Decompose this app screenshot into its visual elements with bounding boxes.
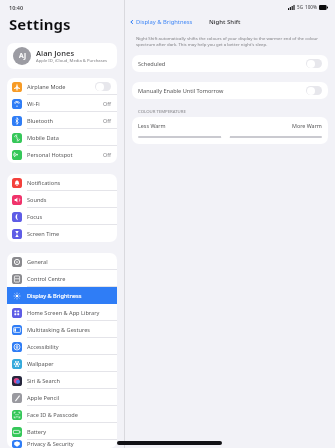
button[interactable]: Screen Time bbox=[7, 225, 117, 242]
staticText: Bluetooth bbox=[27, 117, 103, 125]
staticText: Screen Time bbox=[27, 230, 111, 238]
button[interactable]: Wallpaper bbox=[7, 355, 117, 372]
staticText: Focus bbox=[27, 213, 111, 221]
button[interactable]: Accessibility bbox=[7, 338, 117, 355]
button[interactable]: Face ID & Passcode bbox=[7, 406, 117, 423]
button[interactable]: Siri & Search bbox=[7, 372, 117, 389]
button[interactable]: Bluetooth bbox=[7, 112, 117, 129]
staticText: More Warm bbox=[292, 122, 322, 129]
staticText: Sounds bbox=[27, 196, 111, 204]
staticText: 5G bbox=[297, 4, 303, 10]
button[interactable]: Less Warm bbox=[132, 117, 328, 144]
staticText: Scheduled bbox=[138, 60, 306, 68]
staticText: 100% bbox=[305, 4, 317, 10]
button[interactable]: Focus bbox=[7, 208, 117, 225]
staticText: 10:40 bbox=[9, 4, 24, 11]
staticText: COLOUR TEMPERATURE bbox=[138, 108, 186, 114]
staticText: Face ID & Passcode bbox=[27, 411, 111, 419]
staticText: Accessibility bbox=[27, 343, 111, 351]
button[interactable]: General bbox=[7, 253, 117, 270]
button[interactable]: Scheduled bbox=[132, 55, 328, 72]
staticText: Manually Enable Until Tomorrow bbox=[138, 87, 306, 95]
button[interactable]: Wi-Fi bbox=[7, 95, 117, 112]
staticText: Off bbox=[103, 100, 111, 107]
button[interactable]: Mobile Data bbox=[7, 129, 117, 146]
staticText: Display & Brightness bbox=[27, 292, 111, 300]
staticText: Less Warm bbox=[138, 122, 166, 129]
button[interactable]: Apple Pencil bbox=[7, 389, 117, 406]
button[interactable]: Home Screen & App Library bbox=[7, 304, 117, 321]
button[interactable]: Manually Enable Until Tomorrow bbox=[132, 82, 328, 99]
staticText: Home Screen & App Library bbox=[27, 309, 111, 317]
staticText: Alan Jones bbox=[36, 48, 75, 58]
staticText: Airplane Mode bbox=[27, 83, 95, 91]
staticText: Privacy & Security bbox=[27, 440, 111, 448]
staticText: Personal Hotspot bbox=[27, 151, 103, 159]
button[interactable]: Sounds bbox=[7, 191, 117, 208]
staticText: Apple Pencil bbox=[27, 394, 111, 402]
staticText: Wallpaper bbox=[27, 360, 111, 368]
staticText: Off bbox=[103, 151, 111, 158]
button[interactable]: Control Centre bbox=[7, 270, 117, 287]
button[interactable]: Privacy & Security bbox=[7, 440, 117, 448]
staticText: Settings bbox=[9, 14, 71, 34]
button[interactable]: Airplane Mode bbox=[7, 78, 117, 95]
button[interactable]: Personal Hotspot bbox=[7, 146, 117, 163]
staticText: Off bbox=[103, 117, 111, 124]
staticText: AJ bbox=[19, 51, 26, 61]
staticText: Apple ID, iCloud, Media & Purchases bbox=[36, 58, 108, 64]
staticText: Night Shift automatically shifts the col… bbox=[136, 35, 324, 47]
staticText: General bbox=[27, 258, 111, 266]
button[interactable]: Battery bbox=[7, 423, 117, 440]
staticText: Notifications bbox=[27, 179, 111, 187]
staticText: Siri & Search bbox=[27, 377, 111, 385]
staticText: Control Centre bbox=[27, 275, 111, 283]
button[interactable]: AJ bbox=[7, 43, 117, 69]
button[interactable]: Display & Brightness bbox=[7, 287, 117, 304]
staticText: Multitasking & Gestures bbox=[27, 326, 111, 334]
button[interactable]: Back to Display & Brightness bbox=[129, 18, 193, 26]
staticText: Display & Brightness bbox=[136, 18, 193, 26]
staticText: Battery bbox=[27, 428, 111, 436]
staticText: Wi-Fi bbox=[27, 100, 103, 108]
staticText: Mobile Data bbox=[27, 134, 111, 142]
staticText: Night Shift bbox=[209, 18, 241, 26]
button[interactable]: Multitasking & Gestures bbox=[7, 321, 117, 338]
button[interactable]: Notifications bbox=[7, 174, 117, 191]
